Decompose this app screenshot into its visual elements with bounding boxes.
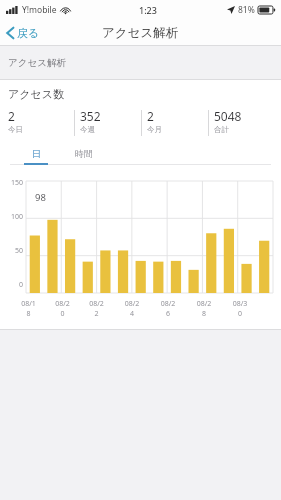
staticText: 98 xyxy=(35,191,46,204)
staticText: 戻る xyxy=(17,26,40,40)
staticText: 08/26 xyxy=(159,299,177,319)
staticText: アクセス解析 xyxy=(8,57,66,69)
staticText: アクセス数 xyxy=(8,87,65,101)
staticText: 100 xyxy=(11,212,24,222)
staticText: 08/28 xyxy=(195,299,213,319)
button[interactable]: 日 xyxy=(16,148,56,165)
staticText: 2 xyxy=(147,108,154,124)
staticText: 150 xyxy=(11,178,24,188)
staticText: 08/22 xyxy=(88,299,105,319)
staticText: 時間 xyxy=(75,148,93,159)
staticText: 今週 xyxy=(80,125,95,134)
button[interactable]: 戻る xyxy=(0,23,48,43)
staticText: アクセス解析 xyxy=(102,25,179,41)
staticText: 1:23 xyxy=(139,4,157,16)
staticText: 08/30 xyxy=(231,299,249,319)
staticText: 今日 xyxy=(8,125,23,134)
staticText: 08/24 xyxy=(123,299,141,319)
staticText: Y!mobile xyxy=(22,4,57,16)
staticText: 合計 xyxy=(214,125,229,134)
staticText: 0 xyxy=(19,280,24,290)
staticText: 352 xyxy=(80,108,101,124)
staticText: 日 xyxy=(32,148,41,159)
staticText: 2 xyxy=(8,108,15,124)
staticText: 今月 xyxy=(147,125,162,134)
button[interactable]: 時間 xyxy=(64,148,104,165)
staticText: 08/20 xyxy=(54,299,71,319)
staticText: 08/18 xyxy=(20,299,37,319)
staticText: 5048 xyxy=(214,108,242,124)
staticText: 50 xyxy=(15,246,24,256)
staticText: 81% xyxy=(238,4,255,16)
